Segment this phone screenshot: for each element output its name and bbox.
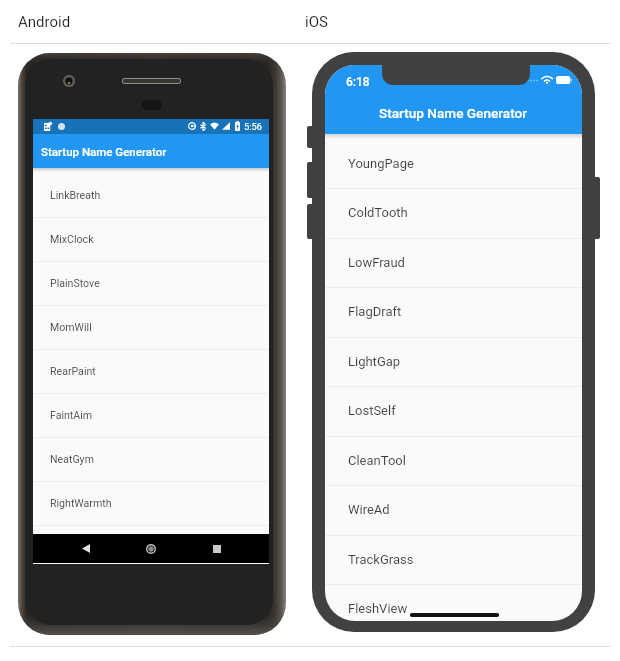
button[interactable]: MixClock	[33, 217, 269, 261]
staticText: ColdTooth	[348, 205, 408, 220]
staticText: WireAd	[348, 502, 390, 517]
staticText: 5:56	[244, 121, 262, 132]
staticText: 6:18	[346, 75, 370, 89]
button[interactable]: Recent apps	[204, 534, 230, 563]
button[interactable]: YoungPage	[325, 139, 582, 189]
staticText: CleanTool	[348, 453, 406, 468]
staticText: TrackGrass	[348, 552, 414, 567]
button[interactable]: FlagDraft	[325, 287, 582, 337]
staticText: MomWill	[50, 321, 92, 333]
staticText: LostSelf	[348, 403, 396, 418]
button[interactable]: LowFraud	[325, 238, 582, 288]
staticText: Android	[18, 13, 71, 31]
button[interactable]: CleanTool	[325, 436, 582, 486]
staticText: YoungPage	[348, 156, 414, 171]
staticText: FaintAim	[50, 409, 93, 421]
staticText: MixClock	[50, 233, 94, 245]
button[interactable]: RightWarmth	[33, 481, 269, 525]
button[interactable]: WireAd	[325, 485, 582, 535]
button[interactable]: Home	[138, 534, 164, 563]
staticText: LinkBreath	[50, 189, 101, 201]
button[interactable]: PlainStove	[33, 261, 269, 305]
staticText: RightWarmth	[50, 497, 112, 509]
button[interactable]: MomWill	[33, 305, 269, 349]
button[interactable]: FaintAim	[33, 393, 269, 437]
button[interactable]: NeatGym	[33, 437, 269, 481]
button[interactable]: RearPaint	[33, 349, 269, 393]
button[interactable]: Back	[73, 534, 99, 563]
staticText: RearPaint	[50, 365, 96, 377]
button[interactable]: ColdTooth	[325, 188, 582, 238]
staticText: LightGap	[348, 354, 401, 369]
button[interactable]: LightGap	[325, 337, 582, 387]
button[interactable]: FleshView	[325, 584, 582, 621]
staticText: PlainStove	[50, 277, 100, 289]
button[interactable]: LostSelf	[325, 386, 582, 436]
staticText: Startup Name Generator	[41, 145, 167, 158]
staticText: FleshView	[348, 601, 408, 616]
staticText: Startup Name Generator	[379, 105, 528, 121]
staticText: FlagDraft	[348, 304, 402, 319]
button[interactable]: TrackGrass	[325, 535, 582, 585]
staticText: NeatGym	[50, 453, 94, 465]
staticText: LowFraud	[348, 255, 405, 270]
staticText: iOS	[305, 13, 328, 31]
button[interactable]: LinkBreath	[33, 173, 269, 217]
